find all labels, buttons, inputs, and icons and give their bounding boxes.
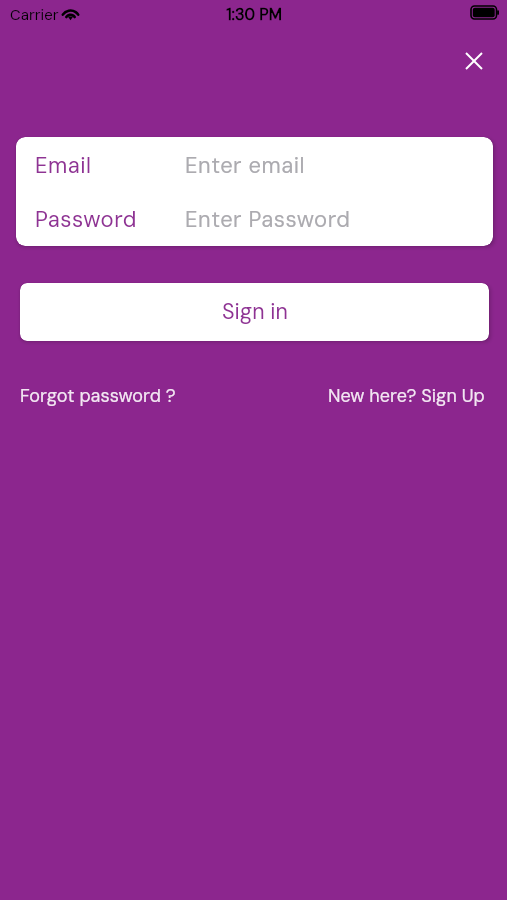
staticText: New here? Sign Up xyxy=(328,384,485,407)
staticText: 1:30 PM xyxy=(226,4,282,25)
button[interactable]: Close xyxy=(453,40,494,81)
staticText: Enter Password xyxy=(185,205,351,234)
button[interactable]: Sign in xyxy=(20,283,489,341)
staticText: Email xyxy=(35,151,92,180)
staticText: Sign in xyxy=(222,298,288,326)
staticText: Carrier xyxy=(10,5,59,25)
button[interactable]: Email xyxy=(16,138,493,192)
button[interactable]: Password xyxy=(16,192,493,246)
staticText: Forgot password ? xyxy=(20,384,176,407)
button[interactable]: New here? Sign Up xyxy=(328,384,485,407)
button[interactable]: Forgot password ? xyxy=(20,384,176,407)
staticText: Enter email xyxy=(185,151,305,180)
staticText: Password xyxy=(35,205,137,234)
